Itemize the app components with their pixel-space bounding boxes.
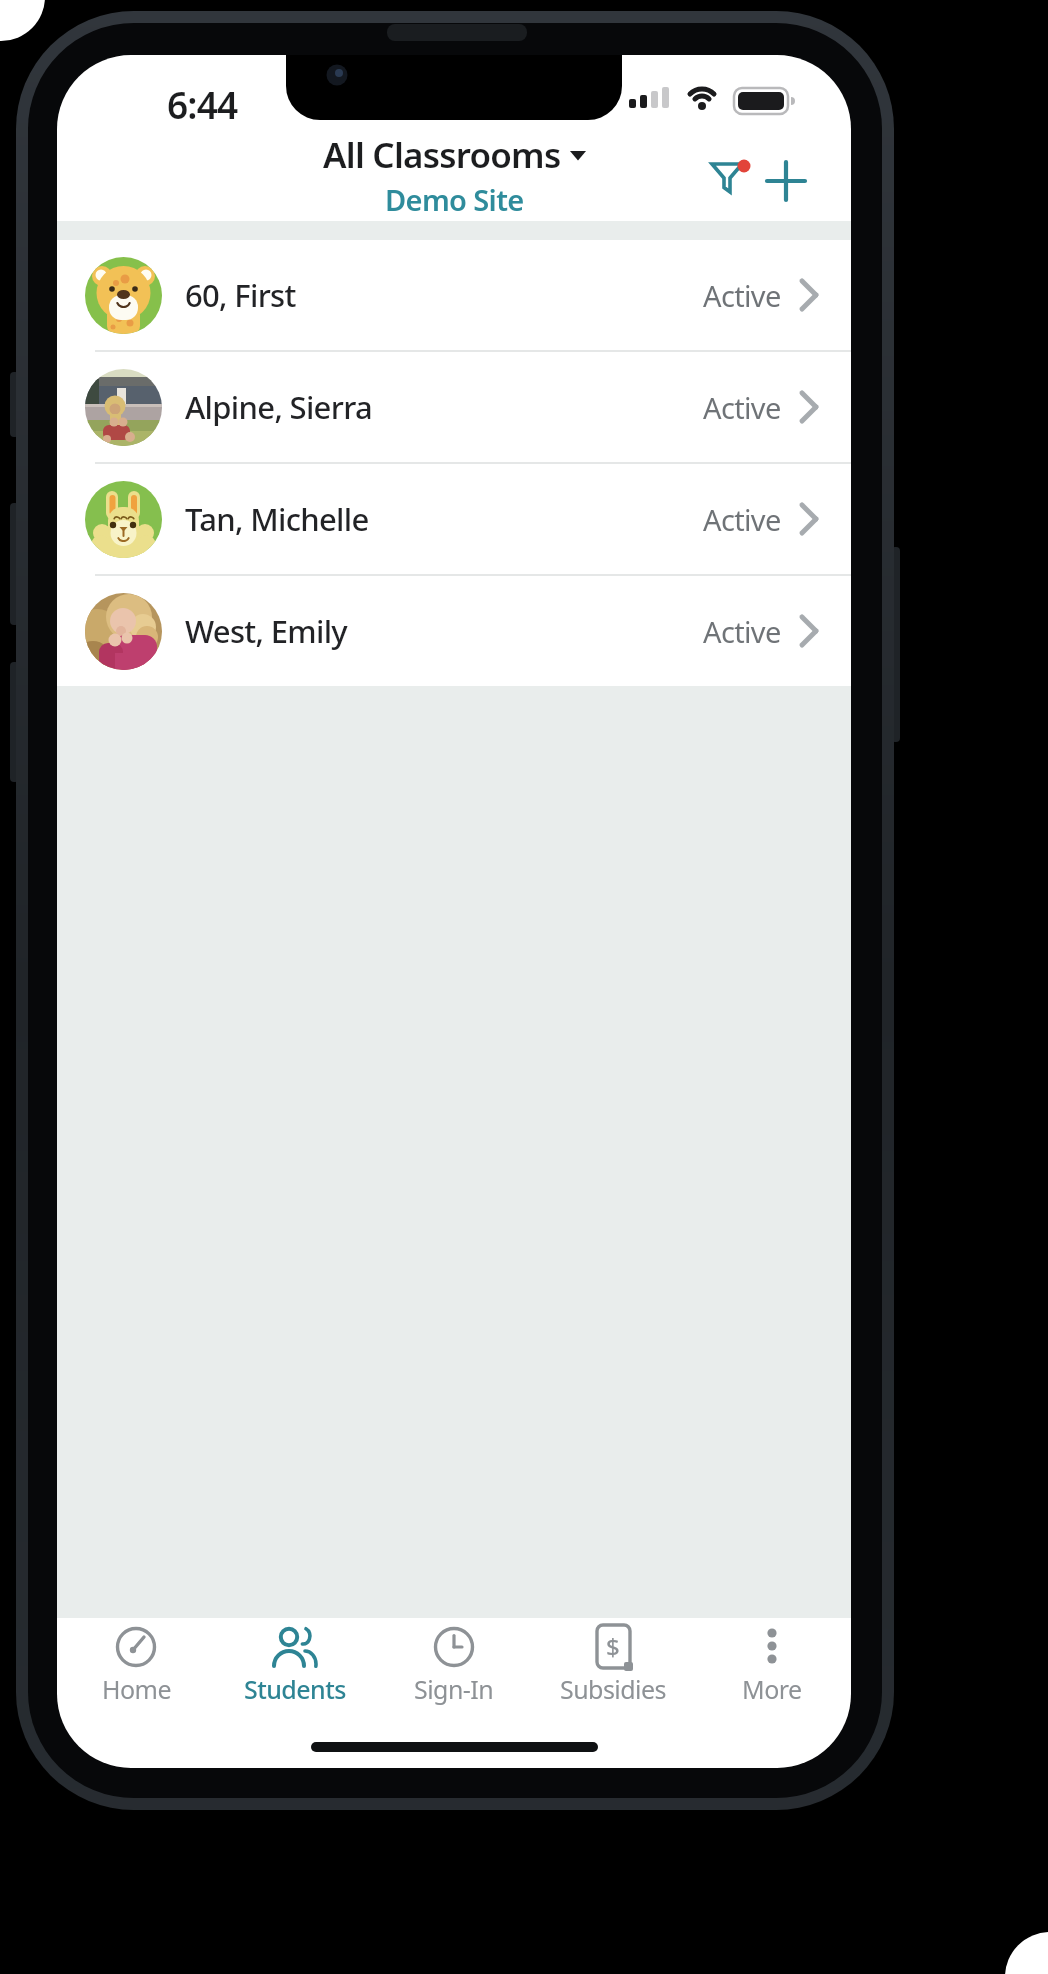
staticText: Sign-In <box>414 1672 494 1706</box>
staticText: Home <box>102 1672 171 1706</box>
button[interactable]: Home <box>57 1618 215 1706</box>
button[interactable]: Students <box>215 1618 374 1706</box>
button[interactable]: More <box>692 1618 851 1706</box>
staticText: Alpine, Sierra <box>185 386 373 428</box>
staticText: Students <box>244 1672 346 1706</box>
staticText: Active <box>703 612 781 651</box>
staticText: Active <box>703 500 781 539</box>
button[interactable]: Alpine, Sierra <box>57 352 851 462</box>
staticText: Active <box>703 388 781 427</box>
staticText: Subsidies <box>560 1672 666 1706</box>
staticText: Demo Site <box>385 180 524 219</box>
staticText: Active <box>703 276 781 315</box>
staticText: 6:44 <box>167 79 238 123</box>
staticText: Tan, Michelle <box>185 498 369 540</box>
staticText: More <box>742 1672 802 1706</box>
staticText: 60, First <box>185 274 296 316</box>
button[interactable]: Tan, Michelle <box>57 464 851 574</box>
button[interactable] <box>762 157 810 205</box>
staticText: $ <box>606 1630 620 1663</box>
staticText: West, Emily <box>185 610 348 652</box>
button[interactable]: $ <box>533 1618 692 1706</box>
staticText: All Classrooms <box>323 131 561 179</box>
button[interactable]: All Classrooms <box>323 131 586 179</box>
button[interactable]: Sign-In <box>374 1618 533 1706</box>
button[interactable] <box>701 151 753 203</box>
button[interactable]: 60, First <box>57 240 851 350</box>
button[interactable]: West, Emily <box>57 576 851 686</box>
